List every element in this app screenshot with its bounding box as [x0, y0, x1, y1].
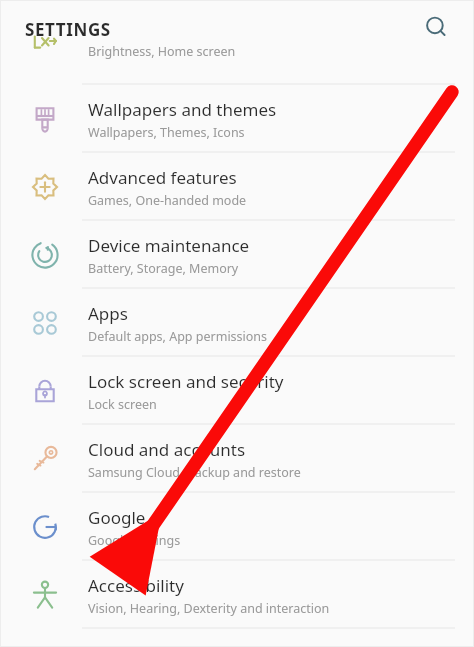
button[interactable]: Search: [415, 6, 459, 50]
staticText: Games, One-handed mode: [88, 192, 247, 209]
staticText: Default apps, App permissions: [88, 328, 268, 345]
button[interactable]: Brightness, Home screen: [0, 17, 474, 85]
staticText: Google: [88, 506, 146, 529]
staticText: Wallpapers and themes: [88, 98, 277, 121]
button[interactable]: Cloud and accounts: [0, 425, 474, 493]
staticText: Google settings: [88, 532, 181, 549]
button[interactable]: Advanced features: [0, 153, 474, 221]
staticText: Device maintenance: [88, 234, 250, 257]
button[interactable]: Accessibility: [0, 561, 474, 629]
staticText: Apps: [88, 302, 128, 325]
staticText: Samsung Cloud, Backup and restore: [88, 464, 301, 481]
staticText: Wallpapers, Themes, Icons: [88, 124, 245, 141]
staticText: Lock screen and security: [88, 370, 284, 393]
button[interactable]: Apps: [0, 289, 474, 357]
staticText: Vision, Hearing, Dexterity and interacti…: [88, 600, 330, 617]
staticText: SETTINGS: [25, 18, 111, 41]
staticText: Lock screen: [88, 396, 157, 413]
button[interactable]: Lock screen and security: [0, 357, 474, 425]
staticText: Accessibility: [88, 574, 184, 597]
staticText: Battery, Storage, Memory: [88, 260, 239, 277]
button[interactable]: Device maintenance: [0, 221, 474, 289]
staticText: Cloud and accounts: [88, 438, 246, 461]
button[interactable]: Google: [0, 493, 474, 561]
button[interactable]: Wallpapers and themes: [0, 85, 474, 153]
staticText: Brightness, Home screen: [88, 43, 236, 60]
staticText: Advanced features: [88, 166, 237, 189]
